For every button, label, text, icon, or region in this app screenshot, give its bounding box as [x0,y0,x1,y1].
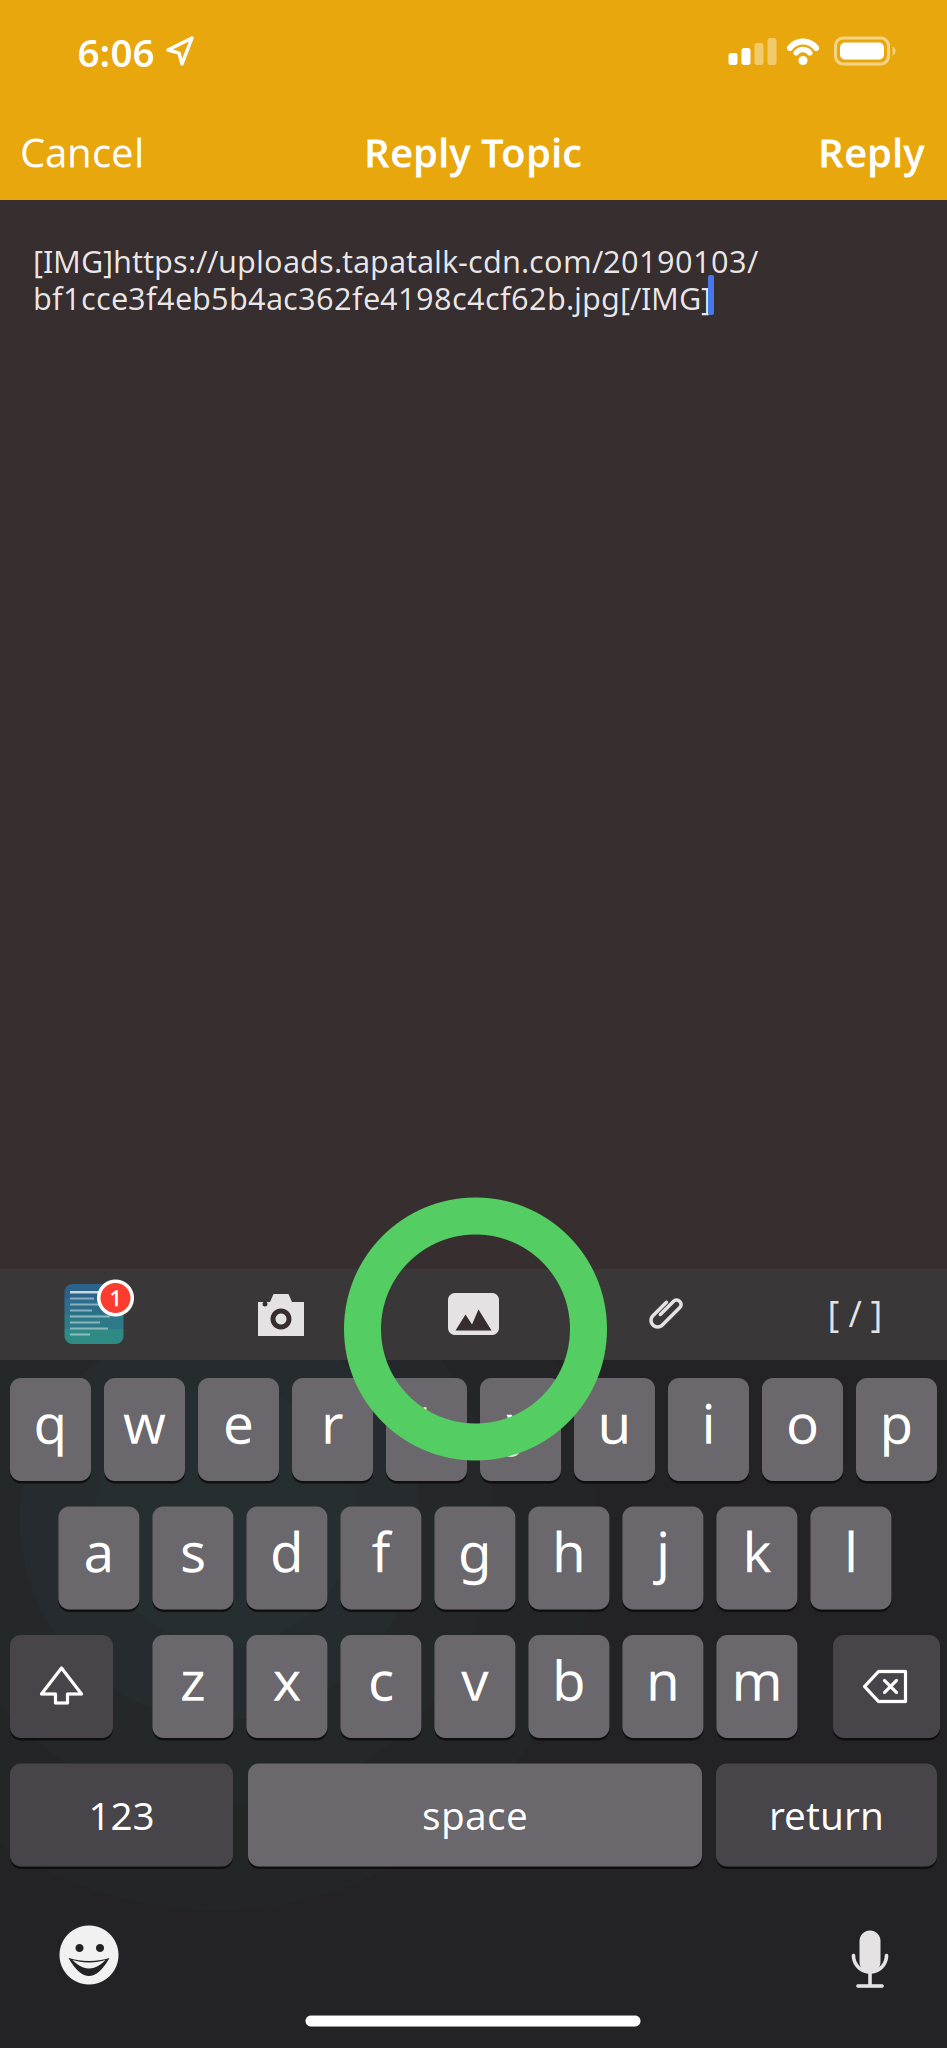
button[interactable]: z [152,1633,233,1739]
staticText: k [742,1515,771,1587]
staticText: Reply Topic [364,125,582,178]
button[interactable]: h [528,1505,609,1611]
button[interactable]: k [716,1505,797,1611]
staticText: i [701,1386,715,1459]
button[interactable]: r [292,1376,373,1482]
staticText: return [769,1789,884,1841]
staticText: 123 [88,1789,154,1841]
staticText: d [270,1515,304,1587]
button[interactable]: Attach file [655,1292,673,1336]
staticText: e [223,1386,254,1459]
button[interactable]: q [10,1376,91,1482]
button[interactable]: s [152,1505,233,1611]
button[interactable]: p [856,1376,937,1482]
button[interactable]: t [386,1376,467,1482]
staticText: x [272,1643,301,1716]
button[interactable]: y [480,1376,561,1482]
staticText: t [416,1386,436,1459]
button[interactable]: u [574,1376,655,1482]
button[interactable]: f [340,1505,421,1611]
staticText: c [368,1643,394,1716]
button[interactable]: return [716,1762,937,1868]
button[interactable]: w [104,1376,185,1482]
staticText: o [786,1386,819,1459]
button[interactable]: space [248,1762,702,1868]
button[interactable]: o [762,1376,843,1482]
button[interactable]: Shift [10,1633,113,1739]
button[interactable]: l [810,1505,891,1611]
staticText: h [552,1515,586,1587]
staticText: z [180,1643,206,1716]
staticText: g [458,1515,492,1587]
staticText: Cancel [20,125,144,178]
button[interactable]: v [434,1633,515,1739]
staticText: [ / ] [827,1289,882,1337]
button[interactable]: Emoji [59,1925,118,1984]
button[interactable]: x [246,1633,327,1739]
staticText: j [656,1515,670,1587]
staticText: u [597,1386,631,1459]
staticText: [IMG]https://uploads.tapatalk-cdn.com/20… [33,241,758,281]
staticText: space [422,1789,528,1841]
button[interactable]: a [58,1505,139,1611]
button[interactable]: i [668,1376,749,1482]
button[interactable]: c [340,1633,421,1739]
button[interactable]: m [716,1633,797,1739]
staticText: n [646,1643,680,1716]
staticText: bf1cce3f4eb5b4ac362fe4198c4cf62b.jpg[/IM… [33,278,711,318]
button[interactable]: d [246,1505,327,1611]
staticText: v [461,1643,489,1716]
staticText: r [321,1386,344,1459]
staticText: w [123,1386,166,1459]
staticText: 6:06 [77,26,154,78]
staticText: l [844,1515,858,1587]
button[interactable]: Delete [833,1633,940,1739]
button[interactable]: Recent photo [48,1254,140,1374]
staticText: 1 [109,1284,121,1312]
button[interactable]: Reply [705,117,925,187]
staticText: b [552,1643,586,1716]
button[interactable]: n [622,1633,703,1739]
button[interactable]: b [528,1633,609,1739]
staticText: p [879,1386,913,1459]
button[interactable]: Cancel [20,117,240,187]
button[interactable]: 123 [10,1762,233,1868]
button[interactable]: Photo library [448,1293,499,1335]
staticText: a [83,1515,114,1587]
button[interactable]: j [622,1505,703,1611]
button[interactable]: Dictation [848,1925,892,1991]
staticText: m [731,1643,782,1716]
button[interactable]: BBCode [827,1289,882,1337]
staticText: y [506,1386,534,1459]
staticText: Reply [818,125,925,178]
button[interactable]: g [434,1505,515,1611]
button[interactable]: Camera [258,1294,304,1336]
staticText: f [371,1515,390,1587]
staticText: s [180,1515,206,1587]
button[interactable]: e [198,1376,279,1482]
staticText: q [33,1386,67,1459]
